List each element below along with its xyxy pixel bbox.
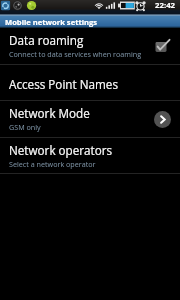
button[interactable]: Access Point Names (0, 65, 180, 101)
staticText: Network operators (9, 142, 113, 158)
staticText: Mobile network settings (5, 17, 98, 27)
button[interactable]: Change network mode (154, 111, 171, 128)
staticText: Data roaming (9, 32, 84, 48)
staticText: Access Point Names (9, 76, 118, 92)
staticText: Select a network operator (9, 159, 96, 169)
button[interactable]: Network operators (0, 138, 180, 174)
staticText: GSM only (9, 122, 41, 132)
button[interactable]: Network Mode (0, 101, 180, 138)
staticText: 22:42 (155, 0, 176, 11)
staticText: Connect to data services when roaming (9, 49, 142, 59)
staticText: Network Mode (9, 105, 90, 121)
button[interactable]: Data roaming (0, 28, 180, 65)
button[interactable]: Data roaming (152, 36, 174, 58)
